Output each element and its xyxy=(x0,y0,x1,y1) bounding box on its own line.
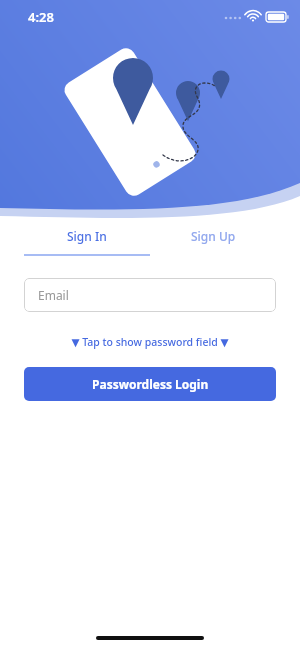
button[interactable]: Sign Up xyxy=(150,228,276,256)
button[interactable]: ▼ Tap to show password field ▼ xyxy=(0,333,300,351)
staticText: 4:28 xyxy=(28,8,54,26)
button[interactable]: Sign In xyxy=(24,228,150,256)
button[interactable]: Email xyxy=(24,278,276,312)
staticText: Sign In xyxy=(67,228,107,244)
staticText: Sign Up xyxy=(191,228,236,244)
staticText: Email xyxy=(38,287,69,303)
button[interactable]: Passwordless Login xyxy=(24,367,276,401)
staticText: Passwordless Login xyxy=(92,376,209,392)
